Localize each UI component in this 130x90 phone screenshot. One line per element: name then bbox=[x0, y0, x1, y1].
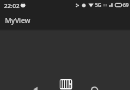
staticText: 69 bbox=[123, 2, 129, 9]
staticText: MyView bbox=[5, 16, 31, 26]
staticText: 22:02 bbox=[4, 2, 20, 10]
button[interactable]: Recent apps bbox=[58, 77, 74, 90]
staticText: 5G bbox=[95, 2, 102, 9]
button[interactable]: Home bbox=[89, 82, 100, 90]
button[interactable]: Back bbox=[30, 82, 41, 90]
